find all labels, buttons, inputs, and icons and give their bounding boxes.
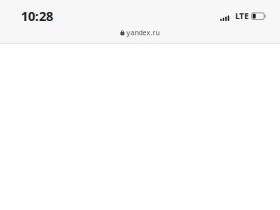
button[interactable]: Address — yandex.ru xyxy=(0,26,280,39)
staticText: 10:28 xyxy=(21,7,53,25)
staticText: LTE xyxy=(235,11,248,22)
staticText: yandex.ru xyxy=(127,28,160,37)
